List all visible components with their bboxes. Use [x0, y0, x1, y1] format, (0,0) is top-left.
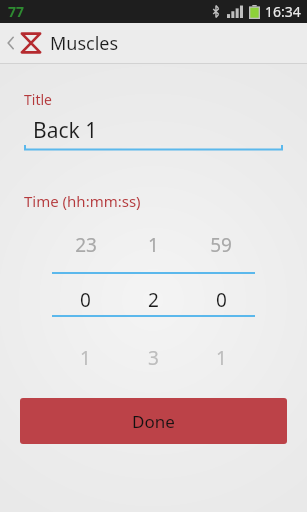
button[interactable]: Back 1: [24, 114, 283, 152]
button[interactable]: 1: [119, 226, 187, 376]
button[interactable]: 59: [187, 226, 255, 376]
staticText: Done: [132, 410, 175, 433]
button[interactable]: Back: [0, 23, 307, 63]
button[interactable]: 23: [52, 226, 119, 376]
staticText: 3: [148, 345, 159, 371]
staticText: 23: [75, 232, 97, 258]
staticText: 1: [148, 232, 159, 258]
staticText: Back 1: [33, 116, 98, 145]
staticText: Time (hh:mm:ss): [24, 191, 141, 211]
button[interactable]: Done: [20, 398, 287, 444]
staticText: Title: [24, 90, 52, 109]
staticText: 59: [210, 232, 232, 258]
staticText: 2: [148, 287, 159, 313]
staticText: 77: [8, 2, 25, 21]
staticText: 16:34: [265, 2, 301, 21]
staticText: 1: [80, 345, 91, 371]
staticText: 0: [80, 287, 91, 313]
other: Back: [6, 34, 16, 52]
staticText: Muscles: [50, 31, 119, 56]
staticText: 0: [216, 287, 227, 313]
staticText: 1: [216, 345, 227, 371]
